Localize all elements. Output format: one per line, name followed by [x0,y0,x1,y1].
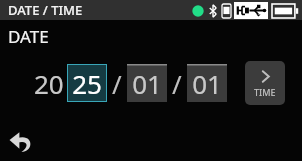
button[interactable]: TIME [245,61,285,105]
staticText: / [112,66,122,101]
staticText: 01 [192,66,222,101]
staticText: / [172,66,182,101]
staticText: DATE / TIME [8,1,83,19]
button[interactable]: 01 [187,64,227,102]
staticText: 25 [72,66,102,101]
button[interactable]: 01 [127,64,167,102]
staticText: 20 [34,66,64,101]
staticText: DATE [8,25,49,48]
button[interactable]: Back [4,123,40,159]
staticText: TIME [254,86,276,98]
staticText: 01 [132,66,162,101]
button[interactable]: 25 [67,64,107,102]
